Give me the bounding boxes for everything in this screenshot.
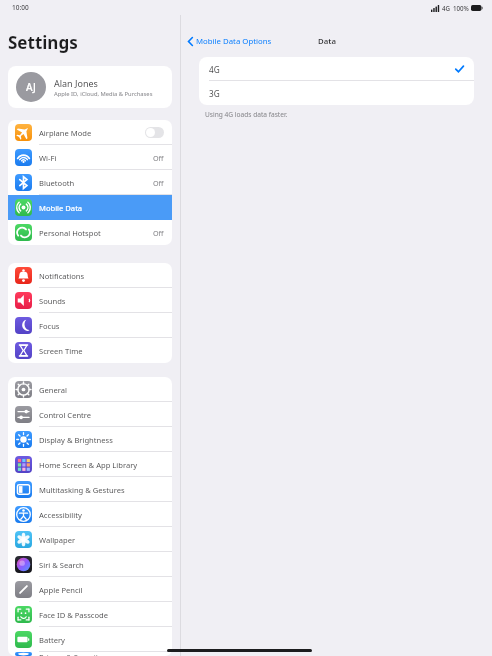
button[interactable]: Control Centre xyxy=(8,402,172,427)
staticText: Apple Pencil xyxy=(39,585,164,595)
button[interactable]: Personal Hotspot xyxy=(8,220,172,245)
button[interactable]: Notifications xyxy=(8,263,172,288)
staticText: 4G xyxy=(442,4,451,12)
staticText: Using 4G loads data faster. xyxy=(205,110,288,119)
button[interactable]: Face ID & Passcode xyxy=(8,602,172,627)
staticText: Sounds xyxy=(39,296,164,306)
staticText: 100% xyxy=(453,4,469,12)
button[interactable]: Home Screen & App Library xyxy=(8,452,172,477)
staticText: Mobile Data Options xyxy=(196,36,272,47)
staticText: Privacy & Security xyxy=(39,652,164,656)
staticText: 10:00 xyxy=(12,3,29,12)
button[interactable]: Multitasking & Gestures xyxy=(8,477,172,502)
staticText: Wallpaper xyxy=(39,535,164,545)
staticText: 3G xyxy=(209,88,464,99)
button[interactable]: Sounds xyxy=(8,288,172,313)
button[interactable]: Battery xyxy=(8,627,172,652)
staticText: Home Screen & App Library xyxy=(39,460,164,470)
button[interactable]: 3G xyxy=(199,81,474,105)
button[interactable]: General xyxy=(8,377,172,402)
button[interactable]: Wi-Fi xyxy=(8,145,172,170)
staticText: Wi-Fi xyxy=(39,153,153,163)
staticText: Siri & Search xyxy=(39,560,164,570)
staticText: Off xyxy=(153,153,164,163)
button[interactable]: Apple Pencil xyxy=(8,577,172,602)
button[interactable]: Privacy & Security xyxy=(8,652,172,656)
staticText: Bluetooth xyxy=(39,178,153,188)
button[interactable]: Siri & Search xyxy=(8,552,172,577)
staticText: Apple ID, iCloud, Media & Purchases xyxy=(54,90,153,98)
staticText: Settings xyxy=(8,31,78,54)
button[interactable]: Mobile Data xyxy=(8,195,172,220)
staticText: AJ xyxy=(26,80,36,94)
staticText: Accessibility xyxy=(39,510,164,520)
button[interactable]: 4G xyxy=(199,57,474,81)
staticText: 4G xyxy=(209,64,455,75)
button[interactable]: Airplane Mode xyxy=(8,120,172,145)
button[interactable]: Mobile Data Options xyxy=(185,33,275,50)
button[interactable]: AJ xyxy=(8,66,172,108)
staticText: Personal Hotspot xyxy=(39,228,153,238)
staticText: Mobile Data xyxy=(39,203,164,213)
staticText: Data xyxy=(318,36,336,47)
staticText: Focus xyxy=(39,321,164,331)
staticText: Alan Jones xyxy=(54,77,98,89)
staticText: Multitasking & Gestures xyxy=(39,485,164,495)
button[interactable]: Accessibility xyxy=(8,502,172,527)
staticText: Screen Time xyxy=(39,346,164,356)
staticText: Notifications xyxy=(39,271,164,281)
staticText: Off xyxy=(153,228,164,238)
button[interactable]: Screen Time xyxy=(8,338,172,363)
button[interactable]: Wallpaper xyxy=(8,527,172,552)
staticText: Airplane Mode xyxy=(39,128,145,138)
staticText: Face ID & Passcode xyxy=(39,610,164,620)
button[interactable]: Focus xyxy=(8,313,172,338)
staticText: Battery xyxy=(39,635,164,645)
button[interactable]: Display & Brightness xyxy=(8,427,172,452)
staticText: Display & Brightness xyxy=(39,435,164,445)
staticText: Off xyxy=(153,178,164,188)
staticText: General xyxy=(39,385,164,395)
button[interactable]: Bluetooth xyxy=(8,170,172,195)
staticText: Control Centre xyxy=(39,410,164,420)
